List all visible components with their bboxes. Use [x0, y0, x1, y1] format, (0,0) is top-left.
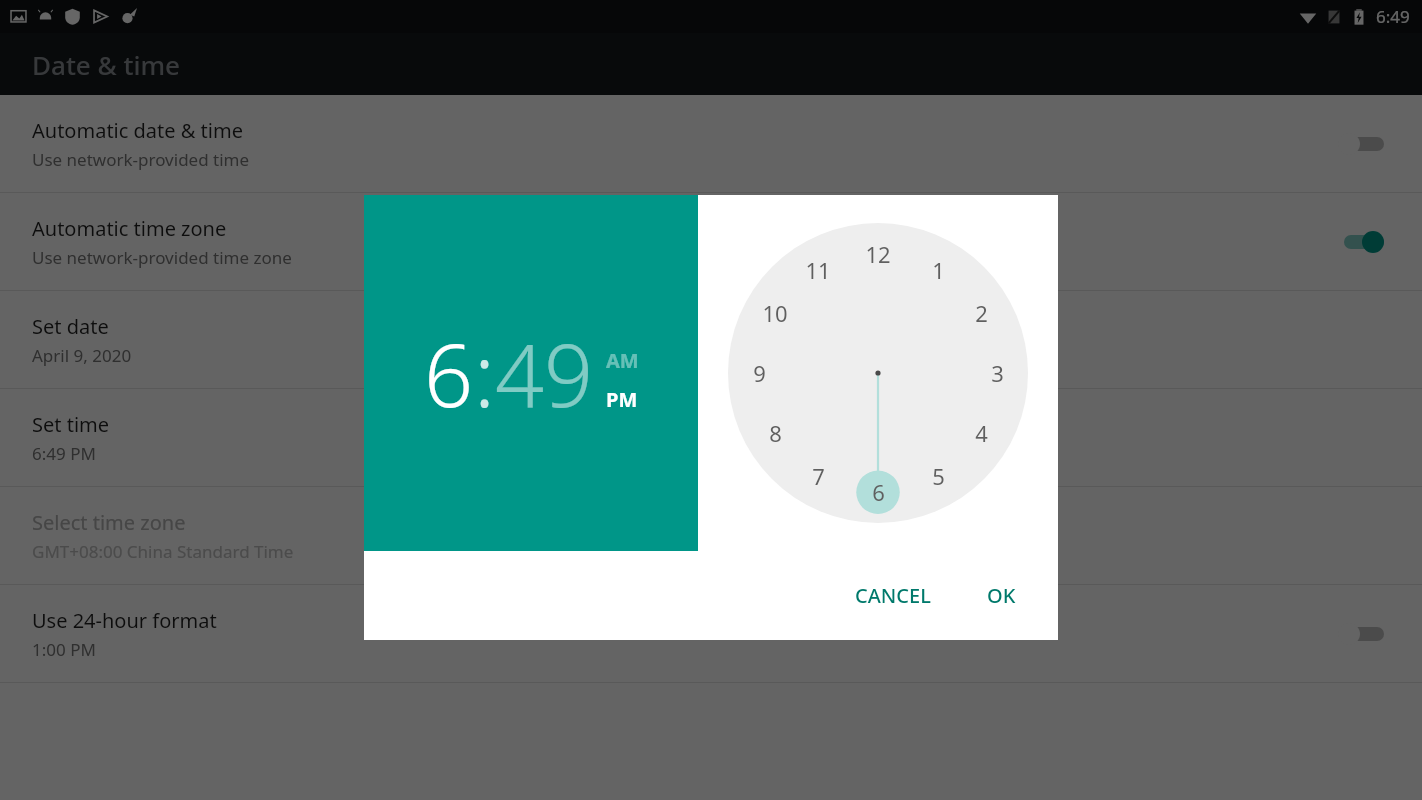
- staticText: 10: [762, 298, 788, 328]
- staticText: Set date: [32, 313, 109, 340]
- button[interactable]: 6: [424, 315, 474, 432]
- button[interactable]: Set time: [0, 389, 1422, 486]
- staticText: Automatic date & time: [32, 117, 243, 144]
- staticText: 6: [424, 315, 474, 432]
- staticText: 6:49 PM: [32, 442, 96, 465]
- staticText: 1: [932, 255, 945, 285]
- button[interactable]: Automatic time zone: [0, 193, 1422, 290]
- staticText: 6:49: [1376, 5, 1410, 28]
- button[interactable]: Automatic date & time: [0, 95, 1422, 192]
- staticText: AM: [606, 347, 639, 374]
- staticText: 3: [991, 358, 1004, 388]
- staticText: PM: [606, 386, 638, 413]
- staticText: GMT+08:00 China Standard Time: [32, 540, 294, 563]
- staticText: OK: [987, 582, 1016, 609]
- button[interactable]: Select time zone: [0, 487, 1422, 584]
- staticText: 8: [769, 418, 782, 448]
- staticText: 11: [805, 255, 831, 285]
- staticText: :: [474, 315, 495, 432]
- staticText: Select time zone: [32, 509, 186, 536]
- staticText: Use network-provided time zone: [32, 246, 292, 269]
- button[interactable]: Clock face, hour 6 selected: [728, 223, 1028, 523]
- staticText: CANCEL: [855, 582, 931, 609]
- staticText: 1:00 PM: [32, 638, 96, 661]
- staticText: 7: [812, 461, 825, 491]
- button[interactable]: Toggle off: [1338, 128, 1390, 160]
- button[interactable]: Toggle off: [1338, 618, 1390, 650]
- button[interactable]: Use 24-hour format: [0, 585, 1422, 682]
- staticText: 4: [975, 418, 988, 448]
- staticText: April 9, 2020: [32, 344, 132, 367]
- staticText: Set time: [32, 411, 110, 438]
- button[interactable]: CANCEL: [839, 570, 947, 621]
- staticText: Automatic time zone: [32, 215, 227, 242]
- staticText: 12: [865, 239, 891, 269]
- button[interactable]: Toggle on: [1338, 226, 1390, 258]
- staticText: 9: [753, 358, 766, 388]
- staticText: 49: [495, 315, 594, 432]
- staticText: 5: [932, 461, 945, 491]
- button[interactable]: 49: [495, 315, 594, 432]
- staticText: 2: [975, 298, 988, 328]
- staticText: Date & time: [32, 47, 180, 82]
- button[interactable]: OK: [971, 570, 1032, 621]
- button[interactable]: Set date: [0, 291, 1422, 388]
- button[interactable]: PM: [606, 386, 638, 413]
- staticText: Use 24-hour format: [32, 607, 217, 634]
- button[interactable]: AM: [606, 347, 639, 374]
- staticText: 6: [872, 477, 885, 507]
- staticText: Use network-provided time: [32, 148, 250, 171]
